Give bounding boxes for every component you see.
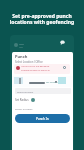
button[interactable]: Chat [60,40,65,45]
staticText: Set pre-approved punch locations with ge… [0,13,84,26]
staticText: Select Location / Office [15,60,43,64]
button[interactable]: Punch In [15,114,70,123]
button[interactable]: Select location [15,88,71,94]
staticText: Change location to punch in [21,69,50,72]
staticText: Punch [15,54,28,59]
staticText: Set Radius [15,98,29,102]
staticText: Punch In [36,117,49,121]
staticText: Select location [17,90,34,93]
staticText: You are not in the geofence [21,65,50,68]
staticText: Punch in radius [15,107,33,110]
button[interactable]: Refresh location [63,66,66,69]
button[interactable] [29,82,45,84]
staticText: set location [46,81,58,84]
